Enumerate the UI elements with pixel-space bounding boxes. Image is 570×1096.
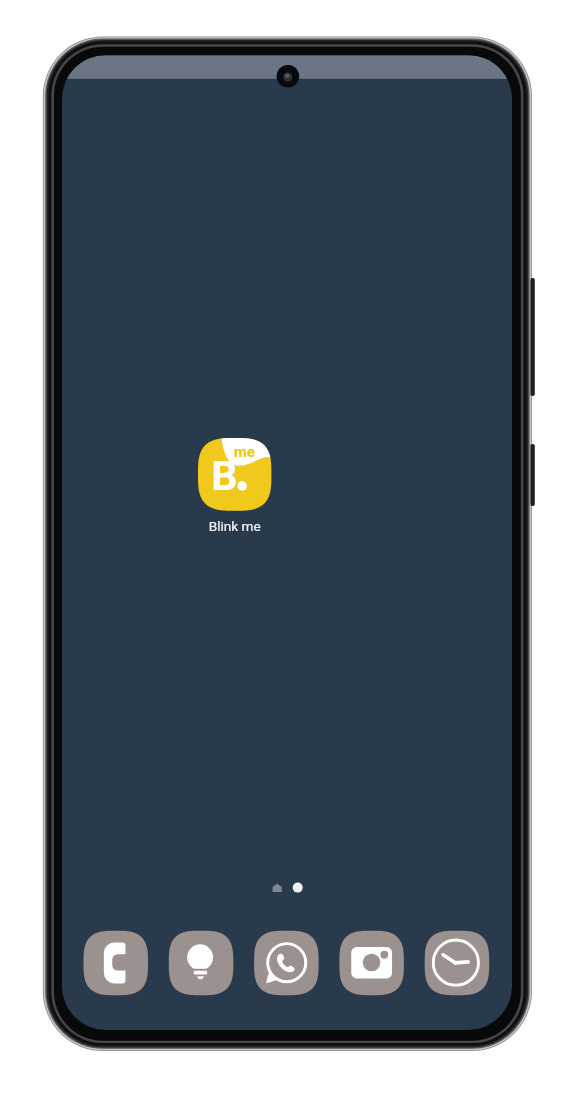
button[interactable]: Home screen page	[268, 878, 288, 898]
button[interactable]: Clock	[425, 931, 490, 996]
button[interactable]	[192, 434, 277, 532]
button[interactable]: Camera	[339, 931, 404, 996]
button[interactable]: WhatsApp	[254, 931, 319, 996]
button[interactable]: Tips	[169, 931, 234, 996]
button[interactable]: Second page	[288, 878, 308, 898]
button[interactable]: Phone	[84, 931, 149, 996]
